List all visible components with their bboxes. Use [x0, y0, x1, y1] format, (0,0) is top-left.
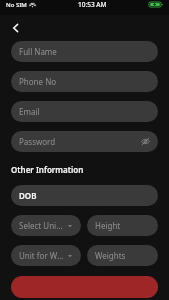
- button[interactable]: Full Name: [11, 41, 158, 62]
- staticText: No SIM: [6, 1, 27, 9]
- button[interactable]: Unit for Wei...: [11, 245, 81, 266]
- staticText: DOB: [19, 190, 37, 201]
- staticText: Select Unit f...: [19, 220, 64, 231]
- staticText: Full Name: [19, 46, 57, 57]
- button[interactable]: Email: [11, 101, 158, 122]
- staticText: Unit for Wei...: [19, 250, 64, 261]
- button[interactable]: Height: [87, 215, 158, 236]
- staticText: Password: [19, 136, 56, 147]
- staticText: 10:53 AM: [78, 0, 107, 9]
- staticText: Weights: [95, 250, 126, 261]
- staticText: Other Information: [11, 164, 84, 175]
- button[interactable]: Phone No: [11, 71, 158, 92]
- button[interactable]: [11, 276, 158, 298]
- button[interactable]: Weights: [87, 245, 158, 266]
- button[interactable]: Select Unit f...: [11, 215, 81, 236]
- staticText: Height: [95, 220, 121, 231]
- button[interactable]: Back: [5, 17, 27, 39]
- staticText: Phone No: [19, 76, 57, 87]
- staticText: Email: [19, 106, 40, 117]
- button[interactable]: Password: [11, 131, 158, 152]
- button[interactable]: DOB: [11, 185, 158, 206]
- other: Show password: [141, 137, 150, 146]
